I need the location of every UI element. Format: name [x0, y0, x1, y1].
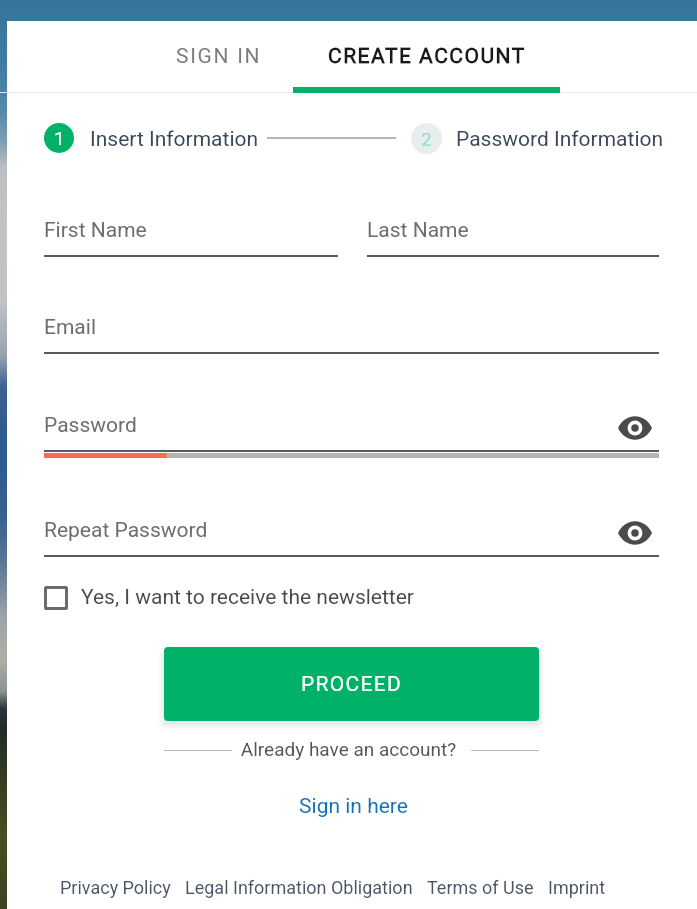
button[interactable]: Legal Information Obligation [185, 877, 413, 898]
staticText: 2 [421, 128, 432, 150]
button[interactable]: Privacy Policy [60, 877, 171, 898]
staticText: First Name [44, 218, 147, 243]
staticText: Yes, I want to receive the newsletter [81, 585, 414, 610]
staticText: SIGN IN [176, 44, 262, 69]
button[interactable]: First Name [44, 218, 338, 262]
staticText: CREATE ACCOUNT [328, 44, 526, 69]
button[interactable]: Password Information [456, 127, 664, 152]
button[interactable]: Sign in here [5, 794, 697, 819]
staticText: Already have an account? [0, 738, 697, 760]
button[interactable]: 1 [44, 123, 74, 153]
button[interactable]: Show password [615, 408, 655, 448]
staticText: Password [44, 413, 137, 438]
button[interactable]: PROCEED [164, 647, 539, 721]
staticText: 1 [54, 127, 65, 149]
button[interactable]: Imprint [548, 877, 606, 898]
button[interactable]: SIGN IN [145, 21, 293, 92]
staticText: Email [44, 315, 96, 340]
staticText: Repeat Password [44, 518, 208, 543]
button[interactable]: Show password [615, 513, 655, 553]
button[interactable]: Repeat Password [44, 518, 659, 568]
button[interactable]: Terms of Use [427, 877, 534, 898]
button[interactable]: Email [44, 315, 659, 359]
button[interactable]: Insert Information [90, 127, 259, 152]
staticText: PROCEED [301, 672, 403, 697]
staticText: Last Name [367, 218, 469, 243]
button[interactable]: Yes, I want to receive the newsletter [44, 585, 414, 610]
button[interactable]: CREATE ACCOUNT [293, 21, 560, 92]
button[interactable]: Last Name [367, 218, 659, 262]
button[interactable]: Password [44, 413, 659, 463]
button[interactable]: 2 [411, 123, 442, 154]
